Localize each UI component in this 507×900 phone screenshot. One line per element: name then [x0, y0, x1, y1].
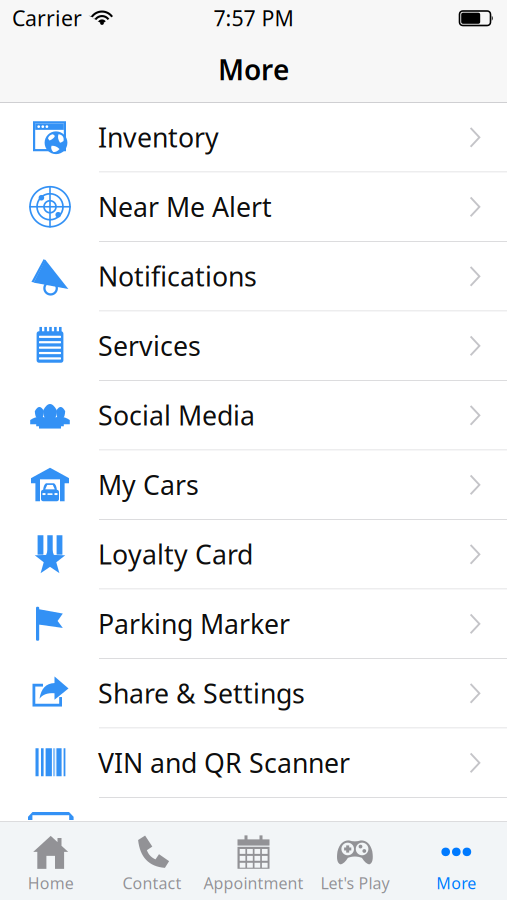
staticText: Let's Play [320, 872, 389, 894]
button[interactable]: Contact [101, 821, 203, 900]
button[interactable]: Social Media [0, 381, 507, 450]
button[interactable]: Near Me Alert [0, 172, 507, 242]
button[interactable]: Notifications [0, 242, 507, 311]
staticText: Carrier [12, 4, 82, 32]
button[interactable]: Services [0, 311, 507, 381]
button[interactable]: Parking Marker [0, 589, 507, 659]
staticText: VIN and QR Scanner [98, 745, 350, 780]
staticText: Appointment [203, 872, 303, 894]
button[interactable]: Share & Settings [0, 659, 507, 728]
button[interactable]: More [406, 821, 507, 900]
staticText: Services [98, 328, 201, 363]
staticText: Social Media [98, 397, 255, 433]
staticText: Loyalty Card [98, 536, 253, 572]
button[interactable]: My Cars [0, 450, 507, 520]
button[interactable]: Inventory [0, 103, 507, 172]
button[interactable]: VIN and QR Scanner [0, 728, 507, 798]
staticText: Home [28, 872, 74, 894]
staticText: Inventory [98, 119, 219, 155]
button[interactable]: Loyalty Card [0, 520, 507, 589]
staticText: More [436, 872, 476, 894]
staticText: Near Me Alert [98, 189, 272, 224]
button[interactable]: Appointment [203, 821, 304, 900]
button[interactable]: Let's Play [304, 821, 406, 900]
button[interactable]: Home [0, 821, 101, 900]
staticText: 7:57 PM [213, 4, 293, 32]
staticText: Contact [123, 872, 182, 894]
staticText: Share & Settings [98, 675, 305, 711]
staticText: Parking Marker [98, 606, 290, 641]
staticText: More [218, 51, 289, 88]
button[interactable] [0, 798, 507, 820]
staticText: My Cars [98, 467, 199, 502]
staticText: Notifications [98, 258, 257, 294]
